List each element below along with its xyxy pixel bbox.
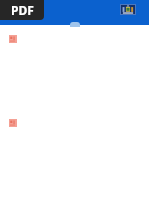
- button[interactable]: PDF: [0, 0, 44, 20]
- button[interactable]: Expand header: [70, 22, 80, 27]
- other: State seal emblem: [120, 4, 136, 15]
- staticText: PDF: [11, 2, 34, 18]
